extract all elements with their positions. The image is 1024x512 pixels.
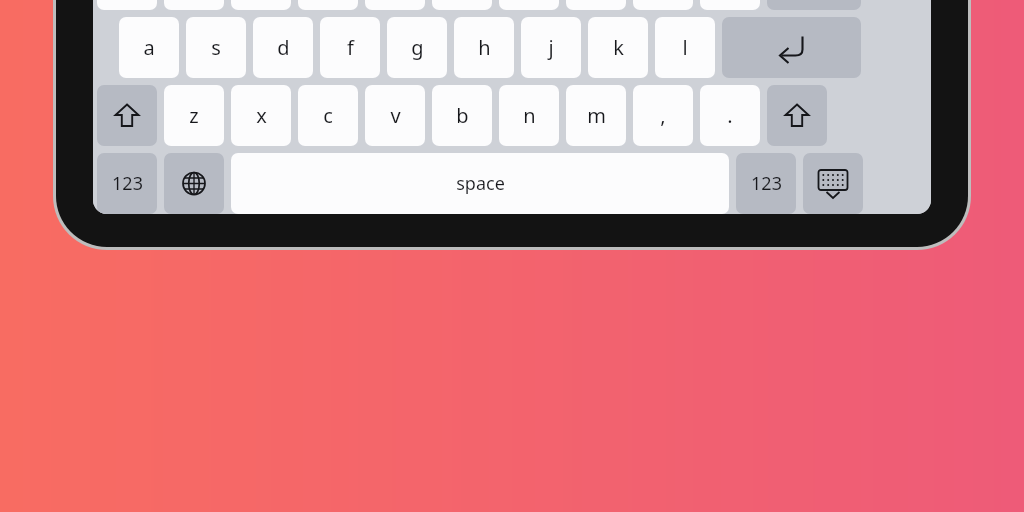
staticText: a	[143, 34, 155, 61]
button[interactable]: h	[454, 17, 514, 78]
button[interactable]: d	[253, 17, 313, 78]
staticText: .	[727, 102, 733, 129]
button[interactable]: Shift	[767, 85, 827, 146]
button[interactable]: i	[566, 0, 626, 10]
button[interactable]: m	[566, 85, 626, 146]
button[interactable]: q	[97, 0, 157, 10]
staticText: n	[523, 102, 536, 129]
staticText: f	[347, 34, 354, 61]
button[interactable]: p	[700, 0, 760, 10]
button[interactable]: Shift	[97, 85, 157, 146]
staticText: m	[587, 102, 606, 129]
button[interactable]: g	[387, 17, 447, 78]
button[interactable]: Backspace	[767, 0, 861, 10]
staticText: x	[256, 102, 267, 129]
staticText: d	[277, 34, 290, 61]
staticText: z	[189, 102, 199, 129]
button[interactable]: v	[365, 85, 425, 146]
button[interactable]: s	[186, 17, 246, 78]
staticText: g	[411, 34, 424, 61]
button[interactable]: a	[119, 17, 179, 78]
button[interactable]: 123	[736, 153, 796, 214]
button[interactable]: f	[320, 17, 380, 78]
button[interactable]: Enter	[722, 17, 861, 78]
button[interactable]: l	[655, 17, 715, 78]
button[interactable]: space	[231, 153, 729, 214]
staticText: j	[548, 34, 554, 61]
button[interactable]: o	[633, 0, 693, 10]
staticText: 123	[112, 171, 143, 196]
button[interactable]: b	[432, 85, 492, 146]
staticText: space	[456, 171, 505, 196]
staticText: b	[456, 102, 469, 129]
staticText: c	[323, 102, 333, 129]
staticText: s	[211, 34, 221, 61]
staticText: l	[682, 34, 688, 61]
button[interactable]: t	[365, 0, 425, 10]
button[interactable]: u	[499, 0, 559, 10]
button[interactable]: 123	[97, 153, 157, 214]
staticText: 123	[751, 171, 782, 196]
staticText: h	[478, 34, 491, 61]
button[interactable]: Change keyboard	[164, 153, 224, 214]
button[interactable]: Hide keyboard	[803, 153, 863, 214]
button[interactable]: c	[298, 85, 358, 146]
staticText: ,	[660, 102, 666, 129]
button[interactable]: e	[231, 0, 291, 10]
staticText: k	[613, 34, 624, 61]
staticText: v	[390, 102, 401, 129]
button[interactable]: y	[432, 0, 492, 10]
button[interactable]: n	[499, 85, 559, 146]
button[interactable]: w	[164, 0, 224, 10]
button[interactable]: k	[588, 17, 648, 78]
button[interactable]: j	[521, 17, 581, 78]
button[interactable]: z	[164, 85, 224, 146]
button[interactable]: r	[298, 0, 358, 10]
button[interactable]: ,	[633, 85, 693, 146]
button[interactable]: .	[700, 85, 760, 146]
button[interactable]: x	[231, 85, 291, 146]
